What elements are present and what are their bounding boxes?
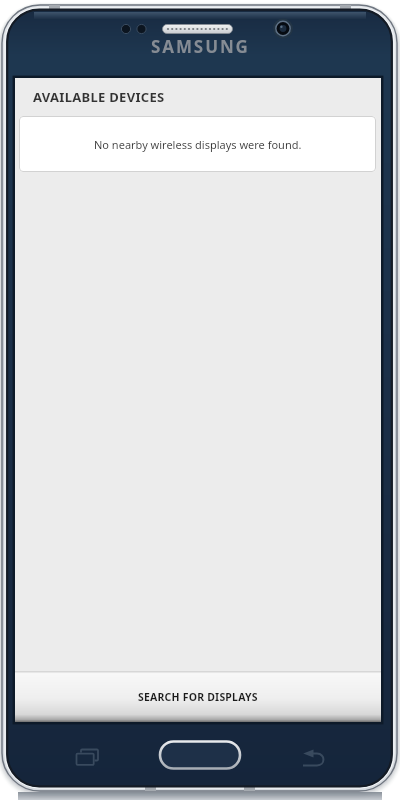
- button[interactable]: SEARCH FOR DISPLAYS: [15, 671, 381, 722]
- staticText: SAMSUNG: [151, 35, 250, 58]
- button[interactable]: No nearby wireless displays were found.: [19, 116, 376, 172]
- staticText: AVAILABLE DEVICES: [33, 88, 165, 106]
- staticText: No nearby wireless displays were found.: [94, 137, 302, 152]
- staticText: SEARCH FOR DISPLAYS: [138, 690, 258, 704]
